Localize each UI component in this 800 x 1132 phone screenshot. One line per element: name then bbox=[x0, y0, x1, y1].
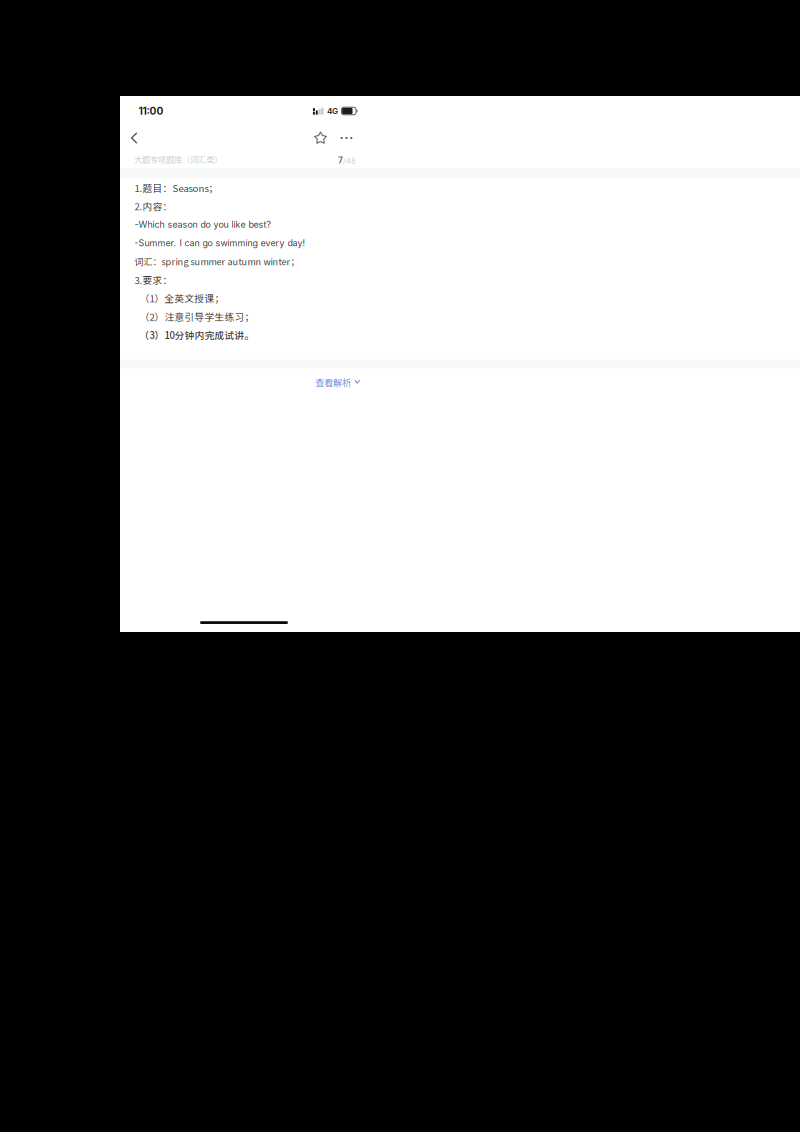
staticText: （1）全英文授课； bbox=[139, 291, 224, 305]
button[interactable]: 查看解析 bbox=[306, 368, 369, 393]
button[interactable]: Back bbox=[123, 126, 145, 150]
staticText: 11:00 bbox=[138, 105, 163, 117]
staticText: 2.内容： bbox=[134, 199, 172, 213]
staticText: （3）10分钟内完成试讲。 bbox=[139, 328, 254, 342]
staticText: /48 bbox=[343, 156, 356, 165]
button[interactable]: More options bbox=[334, 126, 358, 150]
staticText: 7 bbox=[338, 155, 343, 165]
staticText: （2）注意引导学生练习； bbox=[139, 309, 254, 323]
button[interactable]: Favourite bbox=[308, 126, 332, 150]
staticText: 4G bbox=[327, 106, 338, 116]
staticText: 1.题目：Seasons； bbox=[134, 181, 218, 195]
staticText: 查看解析 bbox=[315, 375, 351, 389]
staticText: 大题专项题库（词汇类） bbox=[134, 153, 222, 165]
staticText: 3.要求： bbox=[134, 273, 172, 287]
staticText: -Which season do you like best? bbox=[134, 219, 271, 230]
staticText: 词汇：spring summer autumn winter； bbox=[134, 255, 299, 268]
staticText: -Summer. I can go swimming every day! bbox=[134, 237, 305, 248]
